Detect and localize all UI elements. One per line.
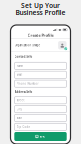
- staticText: Name: [16, 64, 23, 68]
- staticText: Create Profile: [27, 33, 53, 38]
- staticText: State: [16, 116, 22, 120]
- staticText: Save: [40, 135, 46, 138]
- staticText: Address Info: [14, 90, 32, 94]
- button[interactable]: Save: [14, 132, 67, 141]
- staticText: Set Up Your: [21, 1, 60, 10]
- staticText: City: [16, 107, 21, 111]
- staticText: Contact Info: [14, 55, 32, 58]
- staticText: Phone Number: [16, 82, 38, 85]
- staticText: Street: [16, 98, 24, 102]
- staticText: Email: [16, 73, 22, 76]
- staticText: Business Profile: [15, 8, 65, 17]
- staticText: Organization Image: [14, 43, 40, 47]
- staticText: Zip Code: [16, 125, 30, 129]
